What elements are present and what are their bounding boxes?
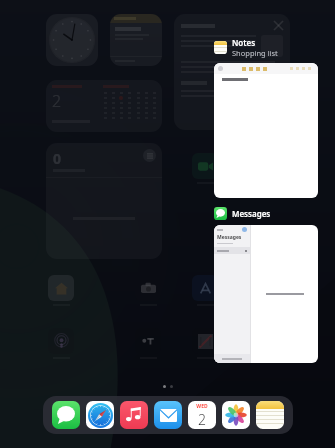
button[interactable]: Music xyxy=(120,401,148,429)
button[interactable]: Notes xyxy=(214,36,278,59)
button[interactable]: Photos xyxy=(222,401,250,429)
button[interactable]: Calendar xyxy=(188,401,216,429)
staticText: 2 xyxy=(198,410,206,429)
button[interactable] xyxy=(214,63,318,198)
button[interactable]: Messages xyxy=(214,225,318,363)
button[interactable]: Messages xyxy=(52,401,80,429)
staticText: Notes xyxy=(232,37,256,48)
staticText: Shopping list xyxy=(232,48,278,58)
staticText: 2 xyxy=(52,90,62,112)
staticText: WED xyxy=(196,403,208,410)
button[interactable]: Messages xyxy=(214,206,271,221)
button[interactable]: Safari xyxy=(86,401,114,429)
staticText: Messages xyxy=(232,208,271,219)
button[interactable]: Mail xyxy=(154,401,182,429)
button[interactable]: Notes xyxy=(256,401,284,429)
staticText: Messages xyxy=(217,234,242,241)
staticText: 0 xyxy=(53,149,62,168)
